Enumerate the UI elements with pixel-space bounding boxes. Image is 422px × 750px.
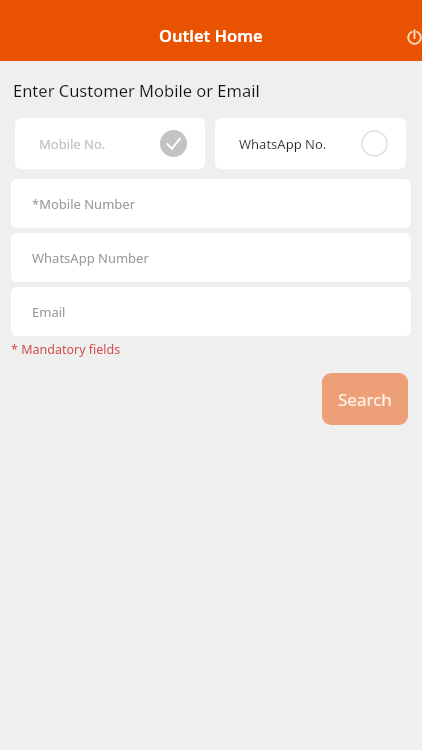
staticText: Search [338, 388, 392, 411]
staticText: WhatsApp No. [239, 135, 327, 153]
staticText: *Mobile Number [32, 195, 135, 213]
staticText: Outlet Home [159, 24, 263, 46]
staticText: Email [32, 303, 66, 321]
button[interactable]: WhatsApp No. [215, 118, 406, 169]
button[interactable]: WhatsApp Number [11, 233, 411, 282]
button[interactable]: Search [322, 373, 408, 425]
button[interactable]: Logout [391, 13, 422, 59]
staticText: Enter Customer Mobile or Email [13, 79, 260, 101]
staticText: Mobile No. [39, 135, 106, 153]
staticText: * Mandatory fields [11, 341, 121, 358]
button[interactable]: *Mobile Number [11, 179, 411, 228]
staticText: WhatsApp Number [32, 249, 149, 267]
button[interactable]: Mobile No. [15, 118, 205, 169]
button[interactable]: Email [11, 287, 411, 336]
